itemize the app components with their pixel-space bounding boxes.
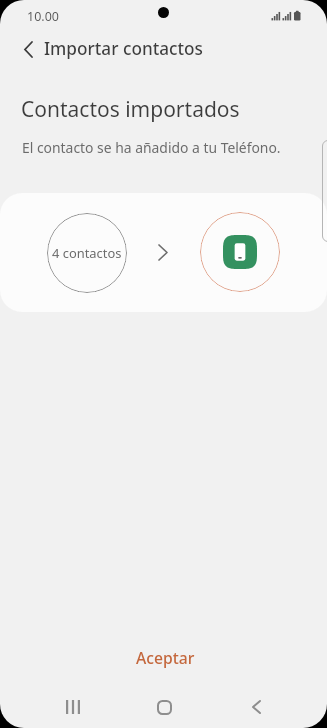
staticText: Importar contactos [44, 37, 203, 60]
staticText: El contacto se ha añadido a tu Teléfono. [22, 138, 281, 157]
staticText: 4 contactos [52, 244, 122, 262]
button[interactable]: Recents [53, 687, 93, 727]
button[interactable]: Back [8, 29, 48, 69]
button[interactable]: 4 contactos [0, 193, 327, 312]
button[interactable]: Back [236, 687, 276, 727]
button[interactable]: Aceptar [0, 640, 327, 674]
staticText: 10.00 [27, 8, 59, 25]
staticText: Aceptar [136, 647, 195, 668]
staticText: Contactos importados [21, 95, 240, 124]
button[interactable]: Home [144, 687, 184, 727]
